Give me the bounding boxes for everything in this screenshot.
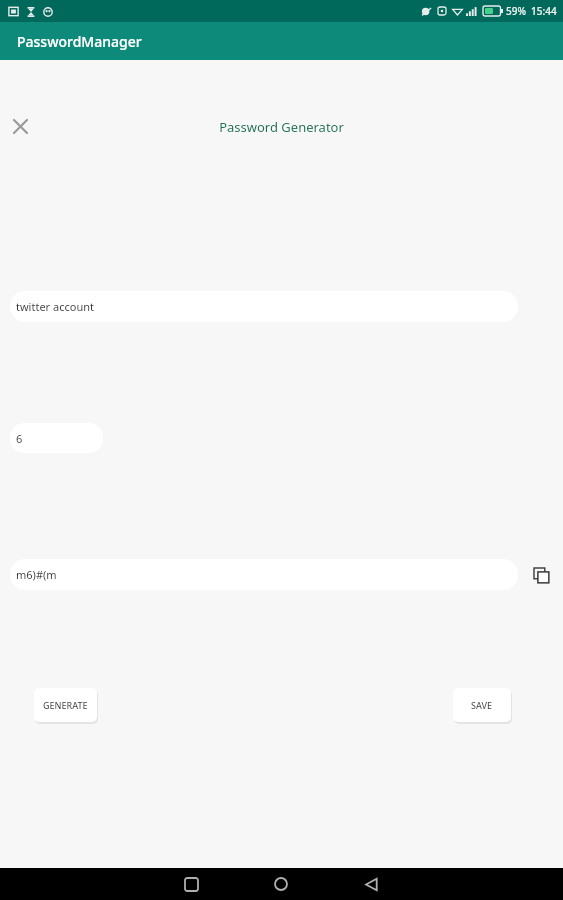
staticText: 59% bbox=[506, 4, 526, 18]
staticText: SAVE bbox=[471, 699, 493, 711]
button[interactable]: Recent apps bbox=[173, 868, 209, 900]
button[interactable]: Copy password bbox=[528, 562, 554, 588]
button[interactable]: Home bbox=[263, 868, 299, 900]
button[interactable]: Back bbox=[353, 868, 389, 900]
staticText: GENERATE bbox=[43, 699, 88, 711]
staticText: Password Generator bbox=[0, 118, 563, 136]
staticText: 15:44 bbox=[531, 4, 557, 18]
button[interactable]: m6)#(m bbox=[10, 559, 518, 590]
staticText: PasswordManager bbox=[17, 32, 142, 51]
button[interactable]: 6 bbox=[10, 423, 103, 453]
button[interactable]: twitter account bbox=[10, 291, 518, 322]
staticText: twitter account bbox=[16, 299, 94, 314]
button[interactable]: Close bbox=[7, 113, 33, 139]
button[interactable]: SAVE bbox=[453, 688, 511, 722]
staticText: m6)#(m bbox=[16, 567, 57, 582]
button[interactable]: GENERATE bbox=[34, 688, 97, 722]
staticText: 6 bbox=[16, 431, 23, 446]
